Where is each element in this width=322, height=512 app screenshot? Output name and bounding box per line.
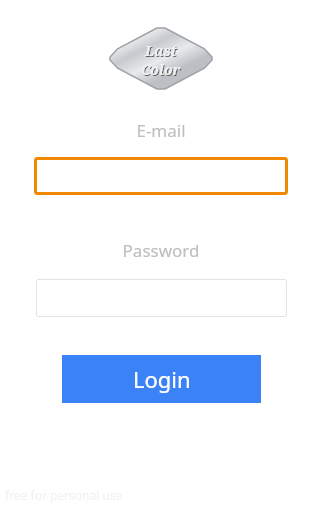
staticText: Password — [0, 239, 322, 262]
button[interactable]: Password input field — [36, 279, 287, 317]
staticText: Color — [141, 60, 181, 79]
staticText: Login — [133, 364, 191, 394]
button[interactable]: Login — [62, 355, 261, 403]
staticText: Last — [145, 41, 177, 60]
staticText: Color — [142, 61, 182, 80]
button[interactable]: E-mail input field — [34, 157, 288, 195]
staticText: Last — [146, 42, 178, 61]
other: Last Color logo — [110, 28, 212, 89]
staticText: E-mail — [0, 119, 322, 142]
staticText: free for personal use — [5, 487, 123, 503]
